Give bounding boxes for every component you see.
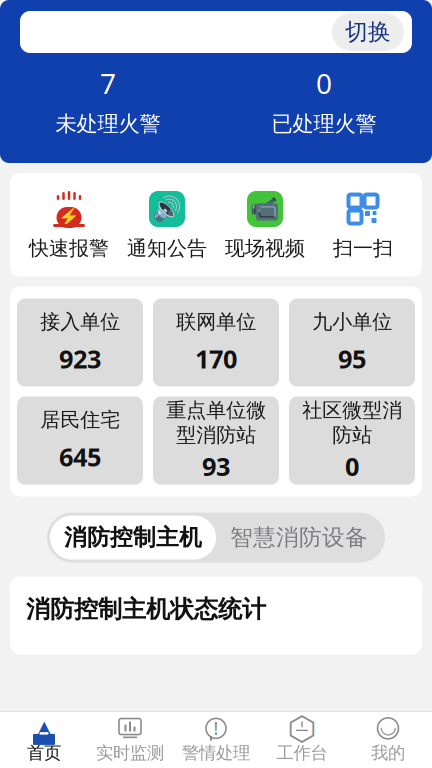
staticText: 九小单位 bbox=[312, 310, 392, 334]
button[interactable]: ▲ bbox=[1, 714, 87, 766]
staticText: 切换 bbox=[345, 18, 391, 46]
staticText: 扫一扫 bbox=[333, 236, 393, 261]
staticText: 95 bbox=[338, 342, 366, 375]
button[interactable]: 🔊 bbox=[118, 185, 216, 265]
staticText: 重点单位微型消防站 bbox=[166, 398, 266, 447]
staticText: 🔊 bbox=[152, 195, 182, 223]
button[interactable]: ◡ bbox=[345, 714, 431, 766]
staticText: 7 bbox=[100, 65, 116, 102]
staticText: ⚡ bbox=[58, 208, 80, 227]
button[interactable]: ⚡ bbox=[20, 185, 118, 265]
staticText: 我的 bbox=[371, 742, 405, 764]
staticText: 170 bbox=[195, 342, 237, 375]
button[interactable]: ! bbox=[173, 714, 259, 766]
staticText: ! bbox=[213, 717, 218, 740]
staticText: 已处理火警 bbox=[271, 111, 376, 137]
staticText: 接入单位 bbox=[40, 310, 120, 334]
staticText: 智慧消防设备 bbox=[230, 524, 368, 551]
staticText: 快速报警 bbox=[29, 236, 109, 261]
staticText: 联网单位 bbox=[176, 310, 256, 334]
staticText: 📹 bbox=[250, 195, 280, 223]
button[interactable]: 扫一扫 bbox=[314, 185, 412, 265]
staticText: 93 bbox=[202, 449, 230, 483]
staticText: 消防控制主机状态统计 bbox=[26, 595, 266, 624]
staticText: ▲ bbox=[36, 716, 52, 740]
staticText: 警情处理 bbox=[182, 742, 250, 764]
button[interactable]: 📹 bbox=[216, 185, 314, 265]
button[interactable]: 智慧消防设备 bbox=[216, 516, 382, 560]
staticText: 现场视频 bbox=[225, 236, 305, 261]
staticText: 首页 bbox=[27, 742, 61, 764]
staticText: ◡ bbox=[380, 715, 395, 738]
staticText: 消防控制主机 bbox=[64, 524, 202, 551]
button[interactable]: 重点单位微型消防站 bbox=[153, 397, 279, 485]
button[interactable]: 居民住宅 bbox=[17, 397, 143, 485]
button[interactable]: 切换 bbox=[332, 13, 404, 51]
button[interactable]: ⬡ bbox=[259, 714, 345, 766]
staticText: 923 bbox=[59, 342, 101, 375]
staticText: 社区微型消防站 bbox=[302, 398, 402, 447]
staticText: 0 bbox=[316, 65, 332, 102]
button[interactable]: 九小单位 bbox=[289, 299, 415, 387]
staticText: 实时监测 bbox=[96, 742, 164, 764]
button[interactable]: 联网单位 bbox=[153, 299, 279, 387]
button[interactable]: 接入单位 bbox=[17, 299, 143, 387]
staticText: 居民住宅 bbox=[40, 408, 120, 432]
button[interactable]: 社区微型消防站 bbox=[289, 397, 415, 485]
button[interactable]: 消防控制主机 bbox=[50, 516, 216, 560]
staticText: 工作台 bbox=[276, 742, 327, 764]
staticText: ⬡ bbox=[287, 709, 316, 747]
staticText: 645 bbox=[59, 440, 101, 473]
staticText: 0 bbox=[345, 449, 359, 483]
staticText: 未处理火警 bbox=[55, 111, 160, 137]
button[interactable]: 实时监测 bbox=[87, 714, 173, 766]
staticText: 通知公告 bbox=[127, 236, 207, 261]
